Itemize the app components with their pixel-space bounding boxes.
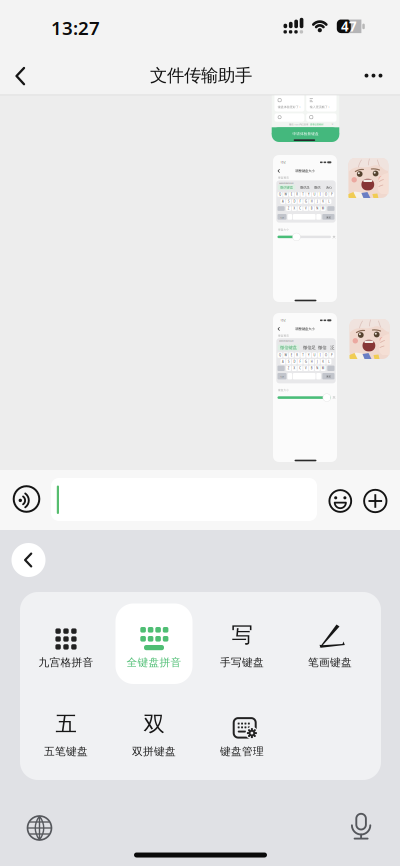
staticText: 双拼键盘: [132, 745, 176, 758]
staticText: 笔画键盘: [308, 656, 352, 669]
staticText: Q: [276, 187, 284, 202]
staticText: 键盘管理: [220, 745, 264, 758]
staticText: 键盘预览: [261, 329, 305, 342]
staticText: P: [329, 187, 335, 202]
staticText: N: [313, 361, 321, 375]
staticText: 发送: [319, 212, 337, 223]
staticText: 申请体验新键盘: [253, 125, 358, 143]
staticText: ×: [328, 115, 336, 133]
staticText: 写: [231, 622, 252, 648]
staticText: 输入更流畅了 ›: [280, 99, 359, 115]
staticText: 查看设置教程: [290, 119, 344, 130]
staticText: P: [329, 348, 335, 362]
staticText: 调整键盘大小: [266, 321, 344, 337]
button[interactable]: Message input: [51, 478, 317, 521]
staticText: 微信键盘: [255, 337, 323, 358]
staticText: V: [303, 361, 309, 375]
button[interactable]: Hold to talk: [9, 482, 43, 516]
button[interactable]: Back: [11, 543, 45, 577]
staticText: 键盘大小: [261, 384, 305, 397]
staticText: A: [279, 355, 286, 369]
staticText: B: [308, 361, 315, 375]
staticText: U: [310, 187, 318, 202]
staticText: 微信: [305, 337, 339, 358]
button[interactable]: 写: [198, 596, 286, 688]
staticText: 123: [274, 212, 289, 223]
button[interactable]: Dictation: [341, 806, 381, 846]
staticText: 文件传输助手: [150, 65, 252, 86]
button[interactable]: 五: [22, 684, 110, 776]
staticText: L: [326, 194, 332, 209]
staticText: G: [302, 194, 310, 209]
staticText: 五笔键盘: [44, 745, 88, 758]
staticText: 发送: [319, 371, 337, 382]
button[interactable]: Emoji: [325, 486, 355, 516]
staticText: 九宫格拼音: [38, 656, 93, 669]
staticText: weixinjianpan: [257, 177, 316, 189]
staticText: C: [297, 201, 304, 216]
staticText: L: [326, 355, 332, 369]
staticText: 微信足: [284, 337, 335, 358]
staticText: D: [290, 194, 298, 209]
button[interactable]: Switch keyboard: [19, 808, 59, 848]
staticText: 五: [55, 711, 76, 737]
staticText: 微信键盘: [261, 179, 313, 196]
staticText: Z: [286, 361, 292, 375]
staticText: 13:27: [51, 15, 100, 40]
staticText: 调整键盘大小: [266, 163, 344, 179]
staticText: K: [320, 194, 327, 209]
button[interactable]: 全键盘拼音: [110, 596, 198, 688]
staticText: 大: [328, 390, 340, 405]
staticText: 全键盘拼音: [126, 656, 181, 669]
staticText: C: [297, 361, 304, 375]
staticText: F: [297, 355, 303, 369]
staticText: 手写键盘: [220, 656, 264, 669]
staticText: 键盘预览: [261, 171, 305, 184]
staticText: 123: [274, 371, 289, 382]
staticText: 13:21: [270, 313, 297, 327]
staticText: W: [281, 187, 291, 202]
staticText: M: [318, 361, 328, 375]
staticText: weixinjianpan: [257, 334, 316, 347]
staticText: T: [300, 187, 306, 202]
button[interactable]: 九宫格拼音: [22, 596, 110, 688]
button[interactable]: 双: [110, 684, 198, 776]
staticText: B: [308, 201, 315, 216]
staticText: 键盘大小: [261, 223, 305, 236]
staticText: K: [320, 355, 327, 369]
staticText: H: [308, 194, 316, 209]
staticText: G: [302, 355, 310, 369]
staticText: F: [297, 194, 303, 209]
staticText: T: [300, 348, 306, 362]
staticText: U: [310, 348, 318, 362]
staticText: E: [288, 348, 294, 362]
button[interactable]: Back: [4, 55, 40, 95]
button[interactable]: More functions: [360, 486, 390, 516]
staticText: Q: [276, 348, 284, 362]
staticText: 键盘体验更好了 ›: [243, 99, 334, 115]
button[interactable]: 键盘管理: [198, 684, 286, 776]
staticText: S: [286, 355, 292, 369]
staticText: R: [294, 187, 301, 202]
staticText: 汤心: [316, 179, 342, 196]
staticText: 双: [143, 711, 164, 737]
staticText: 47: [341, 17, 357, 35]
staticText: Z: [286, 201, 292, 216]
staticText: J: [316, 355, 319, 369]
staticText: 泛: [324, 337, 341, 358]
button[interactable]: 笔画键盘: [286, 596, 374, 688]
staticText: I: [318, 187, 322, 202]
staticText: R: [294, 348, 301, 362]
staticText: I: [318, 348, 322, 362]
staticText: H: [308, 355, 316, 369]
staticText: Y: [306, 187, 312, 202]
staticText: X: [291, 201, 297, 216]
staticText: S: [286, 194, 292, 209]
staticText: A: [279, 194, 286, 209]
staticText: J: [316, 194, 319, 209]
staticText: E: [288, 187, 294, 202]
staticText: D: [290, 355, 298, 369]
staticText: 微信足: [285, 179, 324, 196]
button[interactable]: More: [355, 57, 391, 93]
staticText: W: [281, 348, 291, 362]
